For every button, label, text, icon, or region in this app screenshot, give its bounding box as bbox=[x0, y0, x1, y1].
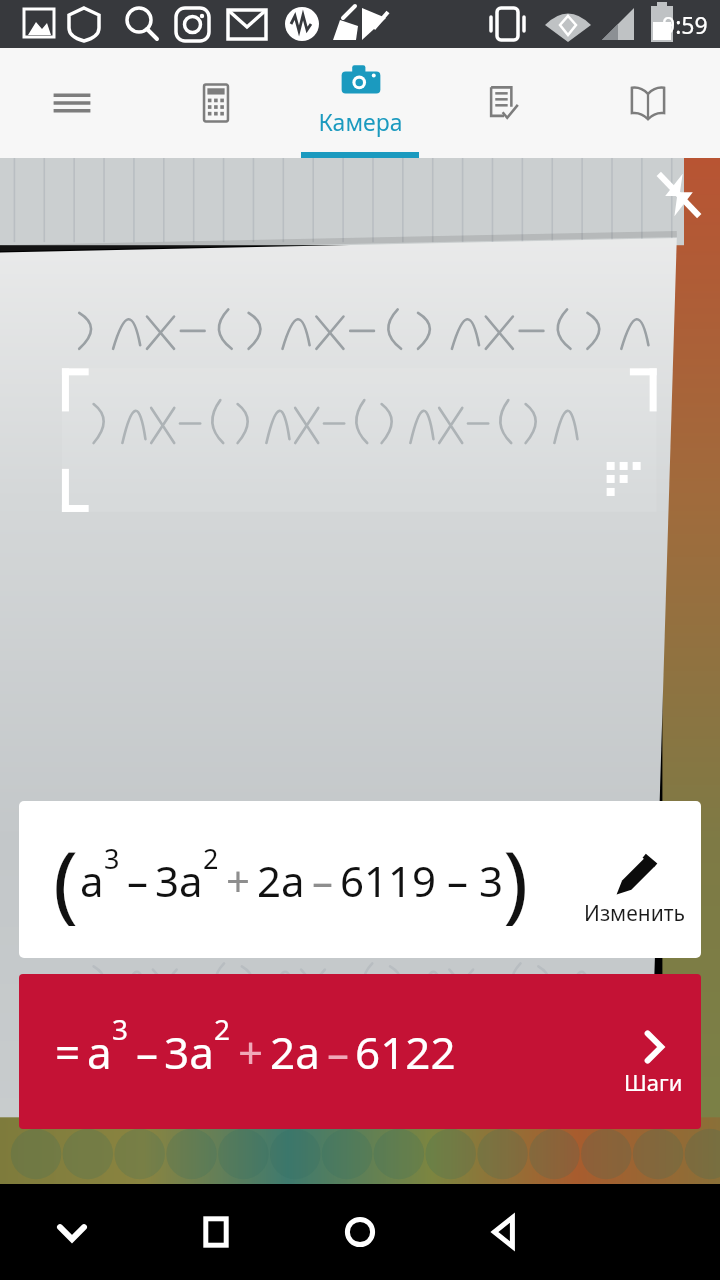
staticText: ) bbox=[503, 823, 529, 937]
staticText: – bbox=[127, 852, 149, 909]
staticText: 6119 – 3 bbox=[340, 852, 503, 909]
staticText: 2a bbox=[270, 1022, 320, 1082]
staticText: 2 bbox=[214, 1010, 231, 1048]
staticText: 3a bbox=[155, 852, 203, 909]
staticText: – bbox=[327, 1022, 349, 1082]
button[interactable]: Hide keyboard bbox=[0, 1184, 144, 1280]
staticText: = bbox=[55, 1022, 81, 1082]
button[interactable]: Камера bbox=[288, 48, 432, 158]
staticText: a bbox=[80, 852, 104, 909]
button[interactable]: Book bbox=[576, 48, 720, 158]
staticText: 2 bbox=[203, 840, 219, 877]
button[interactable]: Flash off bbox=[0, 166, 56, 222]
staticText: Изменить bbox=[584, 899, 685, 928]
button[interactable]: Back bbox=[432, 1184, 576, 1280]
button[interactable]: Calculator bbox=[144, 48, 288, 158]
staticText: 3 bbox=[112, 1010, 129, 1048]
staticText: Камера bbox=[318, 106, 403, 137]
staticText: 3 bbox=[104, 840, 120, 877]
button[interactable]: ( bbox=[19, 801, 701, 958]
button[interactable]: Home bbox=[288, 1184, 432, 1280]
button[interactable]: Menu bbox=[0, 48, 144, 158]
staticText: 3a bbox=[164, 1022, 214, 1082]
staticText: a bbox=[87, 1022, 112, 1082]
button[interactable]: Recents bbox=[144, 1184, 288, 1280]
staticText: ( bbox=[53, 823, 79, 937]
staticText: + bbox=[238, 1022, 264, 1082]
staticText: Шаги bbox=[624, 1067, 683, 1097]
staticText: 9:59 bbox=[662, 9, 708, 40]
staticText: – bbox=[312, 852, 334, 909]
staticText: – bbox=[136, 1022, 158, 1082]
staticText: + bbox=[226, 852, 251, 909]
button[interactable]: Solutions bbox=[432, 48, 576, 158]
staticText: 2a bbox=[257, 852, 305, 909]
staticText: 6122 bbox=[355, 1022, 456, 1082]
button[interactable]: = bbox=[19, 974, 701, 1129]
